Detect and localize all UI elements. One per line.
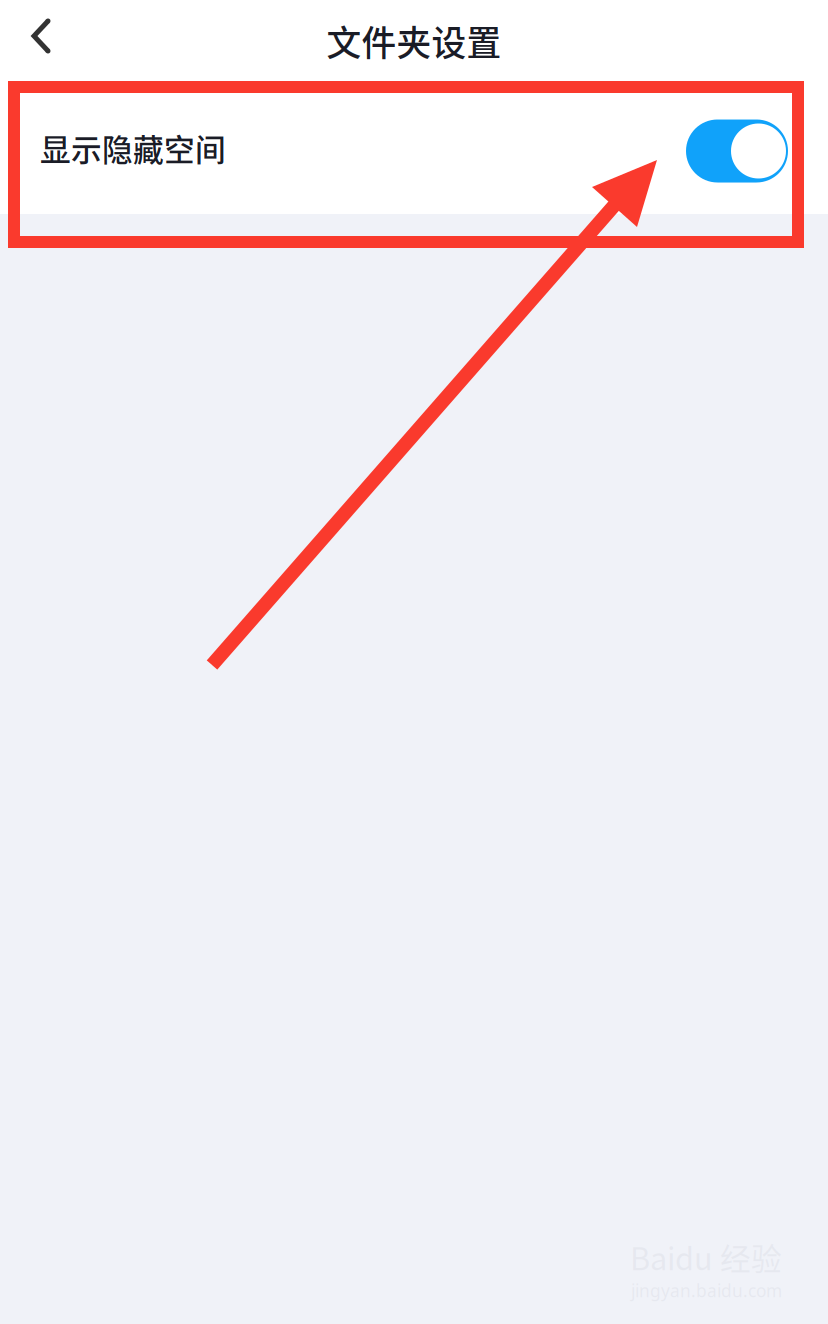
staticText: Baidu 经验 xyxy=(630,1235,782,1279)
button[interactable]: Back xyxy=(0,0,80,82)
staticText: 显示隐藏空间 xyxy=(40,126,226,170)
staticText: 文件夹设置 xyxy=(326,16,501,66)
staticText: jingyan.baidu.com xyxy=(631,1279,782,1302)
button[interactable]: 显示隐藏空间 xyxy=(0,82,828,214)
